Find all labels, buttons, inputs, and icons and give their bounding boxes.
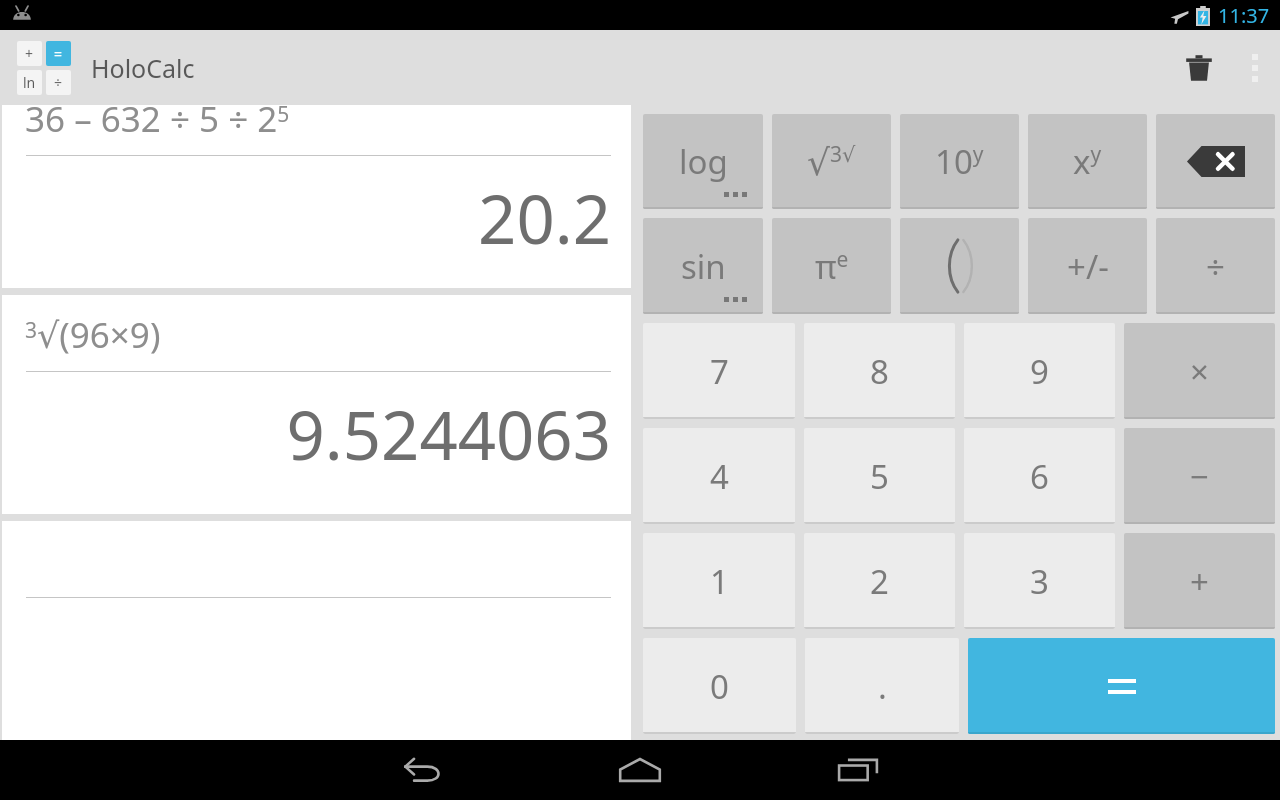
button[interactable]: Equals [968, 638, 1275, 734]
staticText: 36 – 632 ÷ 5 ÷ 25 [25, 95, 290, 143]
staticText: 9 [1030, 349, 1049, 394]
staticText: = [54, 44, 63, 63]
staticText: √3√ [807, 140, 856, 183]
staticText: 1 [710, 559, 729, 604]
button[interactable]: 9 [964, 323, 1115, 419]
button[interactable]: Home [585, 740, 695, 800]
staticText: 5 [870, 454, 889, 499]
button[interactable]: √3√ [772, 114, 891, 209]
button[interactable]: + [17, 41, 71, 95]
button[interactable] [2, 521, 631, 740]
staticText: 0 [710, 664, 729, 709]
button[interactable]: 1 [643, 533, 795, 629]
staticText: πe [815, 244, 849, 289]
button[interactable]: 7 [643, 323, 795, 419]
staticText: ÷ [54, 73, 63, 92]
staticText: 7 [710, 349, 729, 394]
staticText: × [1190, 349, 1209, 394]
button[interactable]: xy [1028, 114, 1147, 209]
button[interactable]: 10y [900, 114, 1019, 209]
staticText: 2 [870, 559, 889, 604]
button[interactable]: sin [643, 218, 763, 314]
staticText: 8 [870, 349, 889, 394]
button[interactable]: 6 [964, 428, 1115, 524]
button[interactable]: 2 [804, 533, 955, 629]
staticText: 10y [935, 139, 984, 184]
staticText: log [679, 139, 728, 184]
staticText: sin [681, 244, 726, 289]
button[interactable]: Back [367, 740, 477, 800]
button[interactable]: +/- [1028, 218, 1147, 314]
staticText: +/- [1067, 244, 1109, 289]
button[interactable]: − [1124, 428, 1275, 524]
staticText: 3 [1030, 559, 1049, 604]
staticText: + [1190, 559, 1209, 604]
button[interactable]: 0 [643, 638, 796, 734]
staticText: + [25, 44, 34, 63]
button[interactable]: × [1124, 323, 1275, 419]
button[interactable]: log [643, 114, 763, 209]
button[interactable]: 3 [964, 533, 1115, 629]
button[interactable]: 36 – 632 ÷ 5 ÷ 25 [2, 105, 631, 288]
staticText: 6 [1030, 454, 1049, 499]
button[interactable]: πe [772, 218, 891, 314]
staticText: 20.2 [2, 172, 611, 262]
button[interactable]: Clear history [1168, 30, 1230, 105]
button[interactable]: Recent apps [803, 740, 913, 800]
staticText: . [878, 664, 887, 709]
button[interactable]: + [1124, 533, 1275, 629]
staticText: xy [1073, 139, 1102, 184]
staticText: 4 [710, 454, 729, 499]
button[interactable]: 8 [804, 323, 955, 419]
staticText: 3√(96×9) [25, 311, 161, 359]
button[interactable]: 4 [643, 428, 795, 524]
button[interactable]: ÷ [1156, 218, 1275, 314]
staticText: ln [23, 73, 36, 92]
button[interactable]: . [805, 638, 959, 734]
button[interactable]: Backspace [1156, 114, 1275, 209]
staticText: 9.5244063 [2, 388, 611, 479]
staticText: HoloCalc [91, 51, 195, 85]
staticText: 11:37 [1218, 2, 1270, 29]
staticText: ÷ [1206, 244, 1225, 289]
button[interactable]: 3√(96×9) [2, 295, 631, 514]
button[interactable]: Parentheses [900, 218, 1019, 314]
staticText: − [1190, 454, 1209, 499]
button[interactable]: 5 [804, 428, 955, 524]
